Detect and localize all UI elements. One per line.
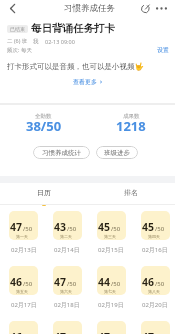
staticText: 第三天 [104, 234, 116, 239]
button[interactable]: 47 [141, 321, 170, 334]
staticText: 46 [142, 275, 155, 289]
staticText: 45 [98, 220, 111, 234]
staticText: /50 [67, 225, 77, 233]
staticText: 全勤数 [35, 113, 52, 120]
staticText: 47 [142, 330, 155, 334]
staticText: 第一天 [16, 234, 28, 239]
button[interactable]: 日历 [0, 186, 87, 208]
staticText: 02月14日 [54, 246, 80, 254]
staticText: 习惯养成任务 [64, 3, 115, 14]
staticText: 频次: 每天 [7, 46, 32, 54]
staticText: /50 [67, 280, 77, 288]
staticText: 我 [33, 38, 39, 45]
staticText: 每日背诵任务打卡 [31, 22, 115, 35]
button[interactable]: Share [137, 0, 153, 16]
button[interactable]: 45 [141, 211, 170, 240]
button[interactable]: 班级进步 [96, 146, 138, 159]
staticText: 日历 [37, 188, 51, 197]
button[interactable]: Back [0, 0, 25, 16]
button[interactable]: 44 [97, 266, 126, 295]
staticText: /50 [23, 225, 33, 233]
staticText: 02月15日 [98, 246, 124, 254]
button[interactable]: 习惯养成统计 [33, 146, 90, 159]
staticText: 成果数 [123, 113, 140, 120]
staticText: 第四天 [148, 234, 160, 239]
button[interactable]: 47 [97, 321, 126, 334]
staticText: 排名 [124, 188, 138, 197]
button[interactable]: 43 [53, 211, 82, 240]
button[interactable]: 47 [9, 211, 38, 240]
staticText: 47 [54, 275, 67, 289]
button[interactable]: 查看更多 [72, 77, 104, 87]
staticText: 45 [142, 220, 155, 234]
staticText: 02月20日 [142, 301, 168, 309]
staticText: 02月18日 [54, 301, 80, 309]
staticText: 已结束 [10, 26, 25, 32]
staticText: 班级进步 [104, 149, 130, 157]
staticText: 习惯养成统计 [42, 149, 81, 157]
staticText: 02-13 09:00 [45, 38, 75, 45]
staticText: 第六天 [60, 289, 72, 294]
staticText: 46 [10, 275, 23, 289]
staticText: 46 [10, 330, 23, 334]
staticText: 第七天 [104, 289, 116, 294]
button[interactable]: 45 [97, 211, 126, 240]
staticText: /50 [111, 225, 121, 233]
staticText: 第八天 [148, 289, 160, 294]
staticText: /50 [111, 280, 121, 288]
staticText: 第二天 [60, 234, 72, 239]
staticText: 38/50 [26, 117, 62, 135]
staticText: 设置 [157, 46, 169, 54]
button[interactable]: 排名 [87, 186, 175, 208]
staticText: 02月13日 [11, 246, 37, 254]
staticText: 第五天 [16, 289, 28, 294]
button[interactable]: 46 [9, 266, 38, 295]
button[interactable]: 47 [53, 266, 82, 295]
button[interactable]: 设置 [157, 46, 169, 54]
button[interactable]: 47 [53, 321, 82, 334]
staticText: 02月19日 [98, 301, 124, 309]
staticText: 02月16日 [142, 246, 168, 254]
button[interactable]: 46 [9, 321, 38, 334]
staticText: 查看更多 [73, 78, 97, 86]
staticText: 二 (6) 班 [7, 37, 28, 45]
staticText: 47 [10, 220, 23, 234]
staticText: 47 [98, 330, 111, 334]
staticText: /50 [23, 280, 33, 288]
staticText: 1218 [116, 117, 146, 135]
staticText: /50 [155, 225, 165, 233]
staticText: 打卡形式可以是音频，也可以是小视频🤟 [7, 62, 168, 71]
staticText: 44 [98, 275, 111, 289]
staticText: /50 [155, 280, 165, 288]
staticText: 47 [54, 330, 67, 334]
staticText: 43 [54, 220, 67, 234]
button[interactable]: 46 [141, 266, 170, 295]
button[interactable]: More options [153, 0, 169, 16]
staticText: 02月17日 [11, 301, 37, 309]
